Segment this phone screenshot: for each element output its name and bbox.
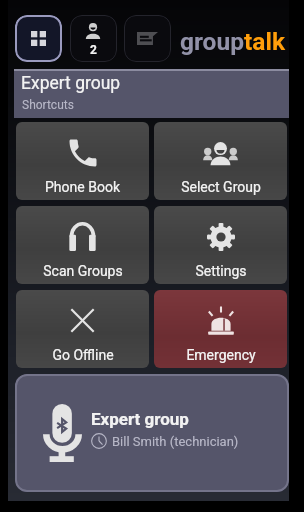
button[interactable]: Go Offline [16,290,149,368]
button[interactable]: Expert group [15,374,289,492]
button[interactable]: Shortcuts [15,15,62,62]
staticText: Expert group [91,409,189,429]
staticText: Expert group [21,73,121,94]
staticText: Phone Book [45,179,120,195]
staticText: Select Group [181,179,261,195]
staticText: Emergency [186,347,256,363]
staticText: Shortcuts [22,98,74,112]
staticText: group [180,27,244,56]
button[interactable]: Scan Groups [16,206,149,284]
staticText: Bill Smith (technician) [112,434,239,449]
button[interactable]: Expert group [14,69,289,118]
staticText: talk [244,27,285,56]
staticText: Go Offline [52,347,114,363]
button[interactable]: Settings [154,206,287,284]
staticText: Settings [195,263,247,279]
button[interactable]: Emergency [154,290,287,368]
button[interactable]: Contacts [70,15,117,62]
staticText: Scan Groups [43,263,123,279]
button[interactable]: Select Group [154,122,287,200]
staticText: 2 [90,43,97,57]
button[interactable]: Messages [124,15,171,62]
button[interactable]: Phone Book [16,122,149,200]
